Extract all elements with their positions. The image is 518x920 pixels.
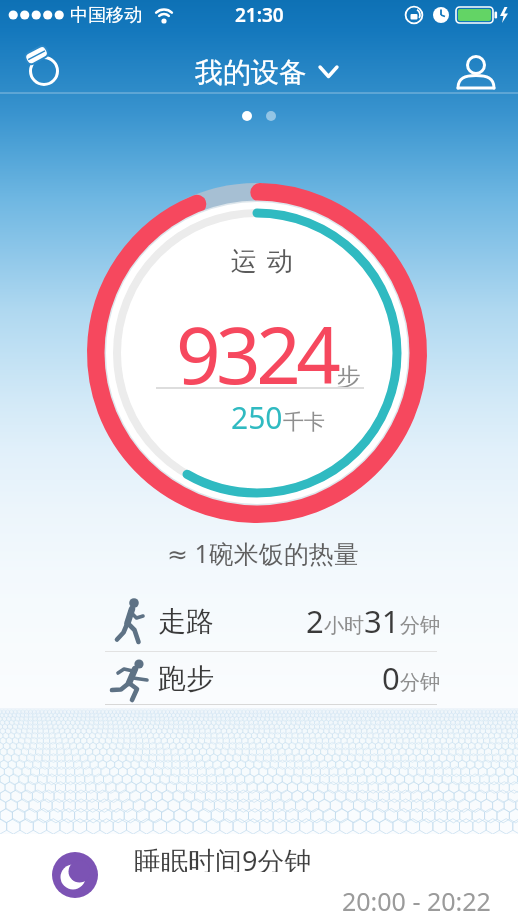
button[interactable]: 跑步 — [105, 652, 440, 704]
staticText: ≈ 1碗米饭的热量 — [167, 536, 359, 570]
staticText: 分钟 — [400, 670, 440, 695]
staticText: 走路 — [158, 604, 214, 639]
staticText: 20:00 - 20:22 — [342, 884, 491, 912]
button[interactable] — [449, 49, 499, 99]
button[interactable] — [17, 41, 67, 91]
staticText: 小时 — [324, 613, 364, 638]
staticText: 9324 — [176, 301, 337, 407]
button[interactable]: 走路 — [105, 592, 440, 650]
staticText: 步 — [337, 362, 361, 392]
staticText: 千卡 — [283, 409, 325, 435]
staticText: 跑步 — [158, 661, 214, 696]
staticText: 分钟 — [400, 613, 440, 638]
button[interactable]: 我的设备 — [0, 30, 518, 92]
staticText: 运动 — [226, 245, 298, 278]
staticText: 睡眠时间9分钟 — [134, 842, 312, 872]
staticText: 31 — [364, 600, 400, 642]
staticText: 250 — [231, 397, 283, 438]
staticText: 中国移动 — [70, 4, 142, 27]
staticText: 我的设备 — [195, 55, 307, 90]
button[interactable]: 睡眠时间9分钟 — [0, 834, 518, 920]
staticText: 2 — [306, 600, 324, 642]
staticText: 0 — [382, 657, 400, 699]
staticText: 21:30 — [235, 2, 284, 28]
